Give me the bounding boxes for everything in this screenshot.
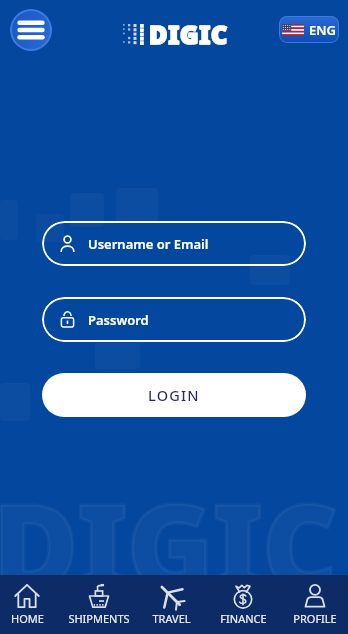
staticText: SHIPMENTS <box>68 611 130 626</box>
staticText: DIGIC <box>149 17 229 51</box>
staticText: DIGIC <box>0 464 337 625</box>
staticText: PROFILE <box>293 611 337 626</box>
staticText: HOME <box>11 611 44 626</box>
button[interactable]: ENG <box>279 16 339 43</box>
button[interactable]: Password <box>42 297 306 342</box>
button[interactable]: HOME <box>0 582 72 626</box>
staticText: DIGIC <box>0 464 337 625</box>
button[interactable]: Username or Email <box>42 221 306 266</box>
button[interactable] <box>10 9 52 51</box>
button[interactable]: PROFILE <box>270 582 348 626</box>
staticText: Username or Email <box>88 235 209 253</box>
staticText: ENG <box>309 21 337 39</box>
staticText: DIGIC <box>149 17 229 51</box>
button[interactable]: LOGIN <box>42 373 306 417</box>
staticText: Password <box>88 311 149 329</box>
staticText: LOGIN <box>148 385 200 405</box>
button[interactable]: TRAVEL <box>126 582 216 626</box>
button[interactable]: SHIPMENTS <box>54 582 144 626</box>
staticText: FINANCE <box>220 611 267 626</box>
button[interactable]: FINANCE <box>198 582 288 626</box>
staticText: TRAVEL <box>152 611 191 626</box>
